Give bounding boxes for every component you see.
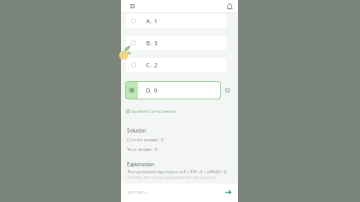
button[interactable]: D. 0 — [125, 81, 220, 99]
staticText: D. 0 — [146, 86, 157, 94]
staticText: The optimized expression is F = X(Y + X … — [127, 169, 227, 174]
button[interactable]: Notifications — [225, 2, 234, 12]
staticText: Your answer : 0 — [127, 146, 157, 152]
button[interactable]: C. 2 — [125, 57, 226, 72]
staticText: A. 1 — [146, 17, 157, 25]
staticText: B. 3 — [146, 39, 157, 47]
button[interactable]: A. 1 — [125, 13, 226, 28]
button[interactable]: B. 3 — [125, 35, 226, 50]
staticText: Excellent! Correct answer — [131, 108, 176, 114]
button[interactable]: Menu — [128, 2, 137, 10]
staticText: QUESTION 14 — [126, 190, 146, 195]
staticText: C. 2 — [146, 61, 157, 69]
button[interactable]: Answer details — [225, 88, 230, 93]
staticText: Correct answer : 0 — [127, 137, 163, 143]
staticText: Explanation — [127, 161, 154, 168]
staticText: Solution — [127, 127, 146, 134]
button[interactable]: Next question — [224, 188, 232, 196]
staticText: Therefore, the result is independent fro… — [127, 175, 216, 180]
